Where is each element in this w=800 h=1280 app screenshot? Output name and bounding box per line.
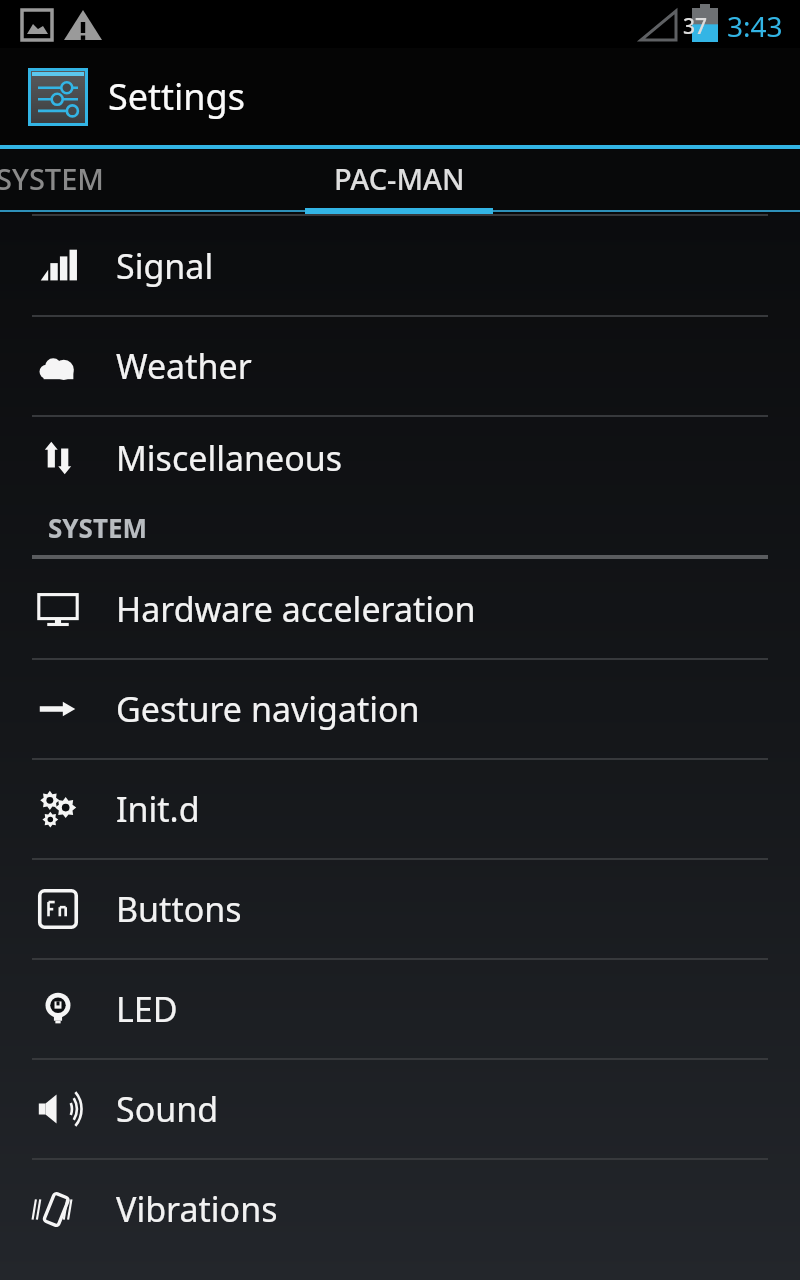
button[interactable]: Signal [0, 216, 800, 315]
staticText: 3:43 [727, 7, 783, 45]
button[interactable]: Vibrations [0, 1160, 800, 1258]
button[interactable]: Sound [0, 1060, 800, 1158]
staticText: SYSTEM [48, 510, 148, 545]
button[interactable]: Buttons [0, 860, 800, 958]
staticText: SYSTEM [0, 159, 104, 198]
button[interactable]: SYSTEM [0, 149, 196, 214]
button[interactable]: Miscellaneous [0, 417, 800, 499]
staticText: 37 [683, 12, 708, 41]
staticText: Miscellaneous [116, 435, 343, 481]
button[interactable]: LED [0, 960, 800, 1058]
button[interactable]: Init.d [0, 760, 800, 858]
staticText: Sound [116, 1086, 219, 1132]
button[interactable]: Weather [0, 317, 800, 415]
staticText: Init.d [116, 786, 200, 832]
staticText: Settings [108, 72, 245, 121]
staticText: Signal [116, 243, 214, 289]
staticText: Vibrations [116, 1186, 278, 1232]
button[interactable]: Hardware acceleration [0, 559, 800, 658]
staticText: Buttons [116, 886, 242, 932]
staticText: PAC-MAN [334, 159, 465, 198]
button[interactable]: Gesture navigation [0, 660, 800, 758]
staticText: Weather [116, 343, 252, 389]
button[interactable]: PAC-MAN [305, 149, 493, 214]
button[interactable]: Settings app icon [0, 48, 800, 145]
staticText: Hardware acceleration [116, 586, 476, 632]
staticText: Gesture navigation [116, 686, 420, 732]
other: Settings app icon [28, 68, 88, 126]
staticText: LED [116, 986, 178, 1032]
